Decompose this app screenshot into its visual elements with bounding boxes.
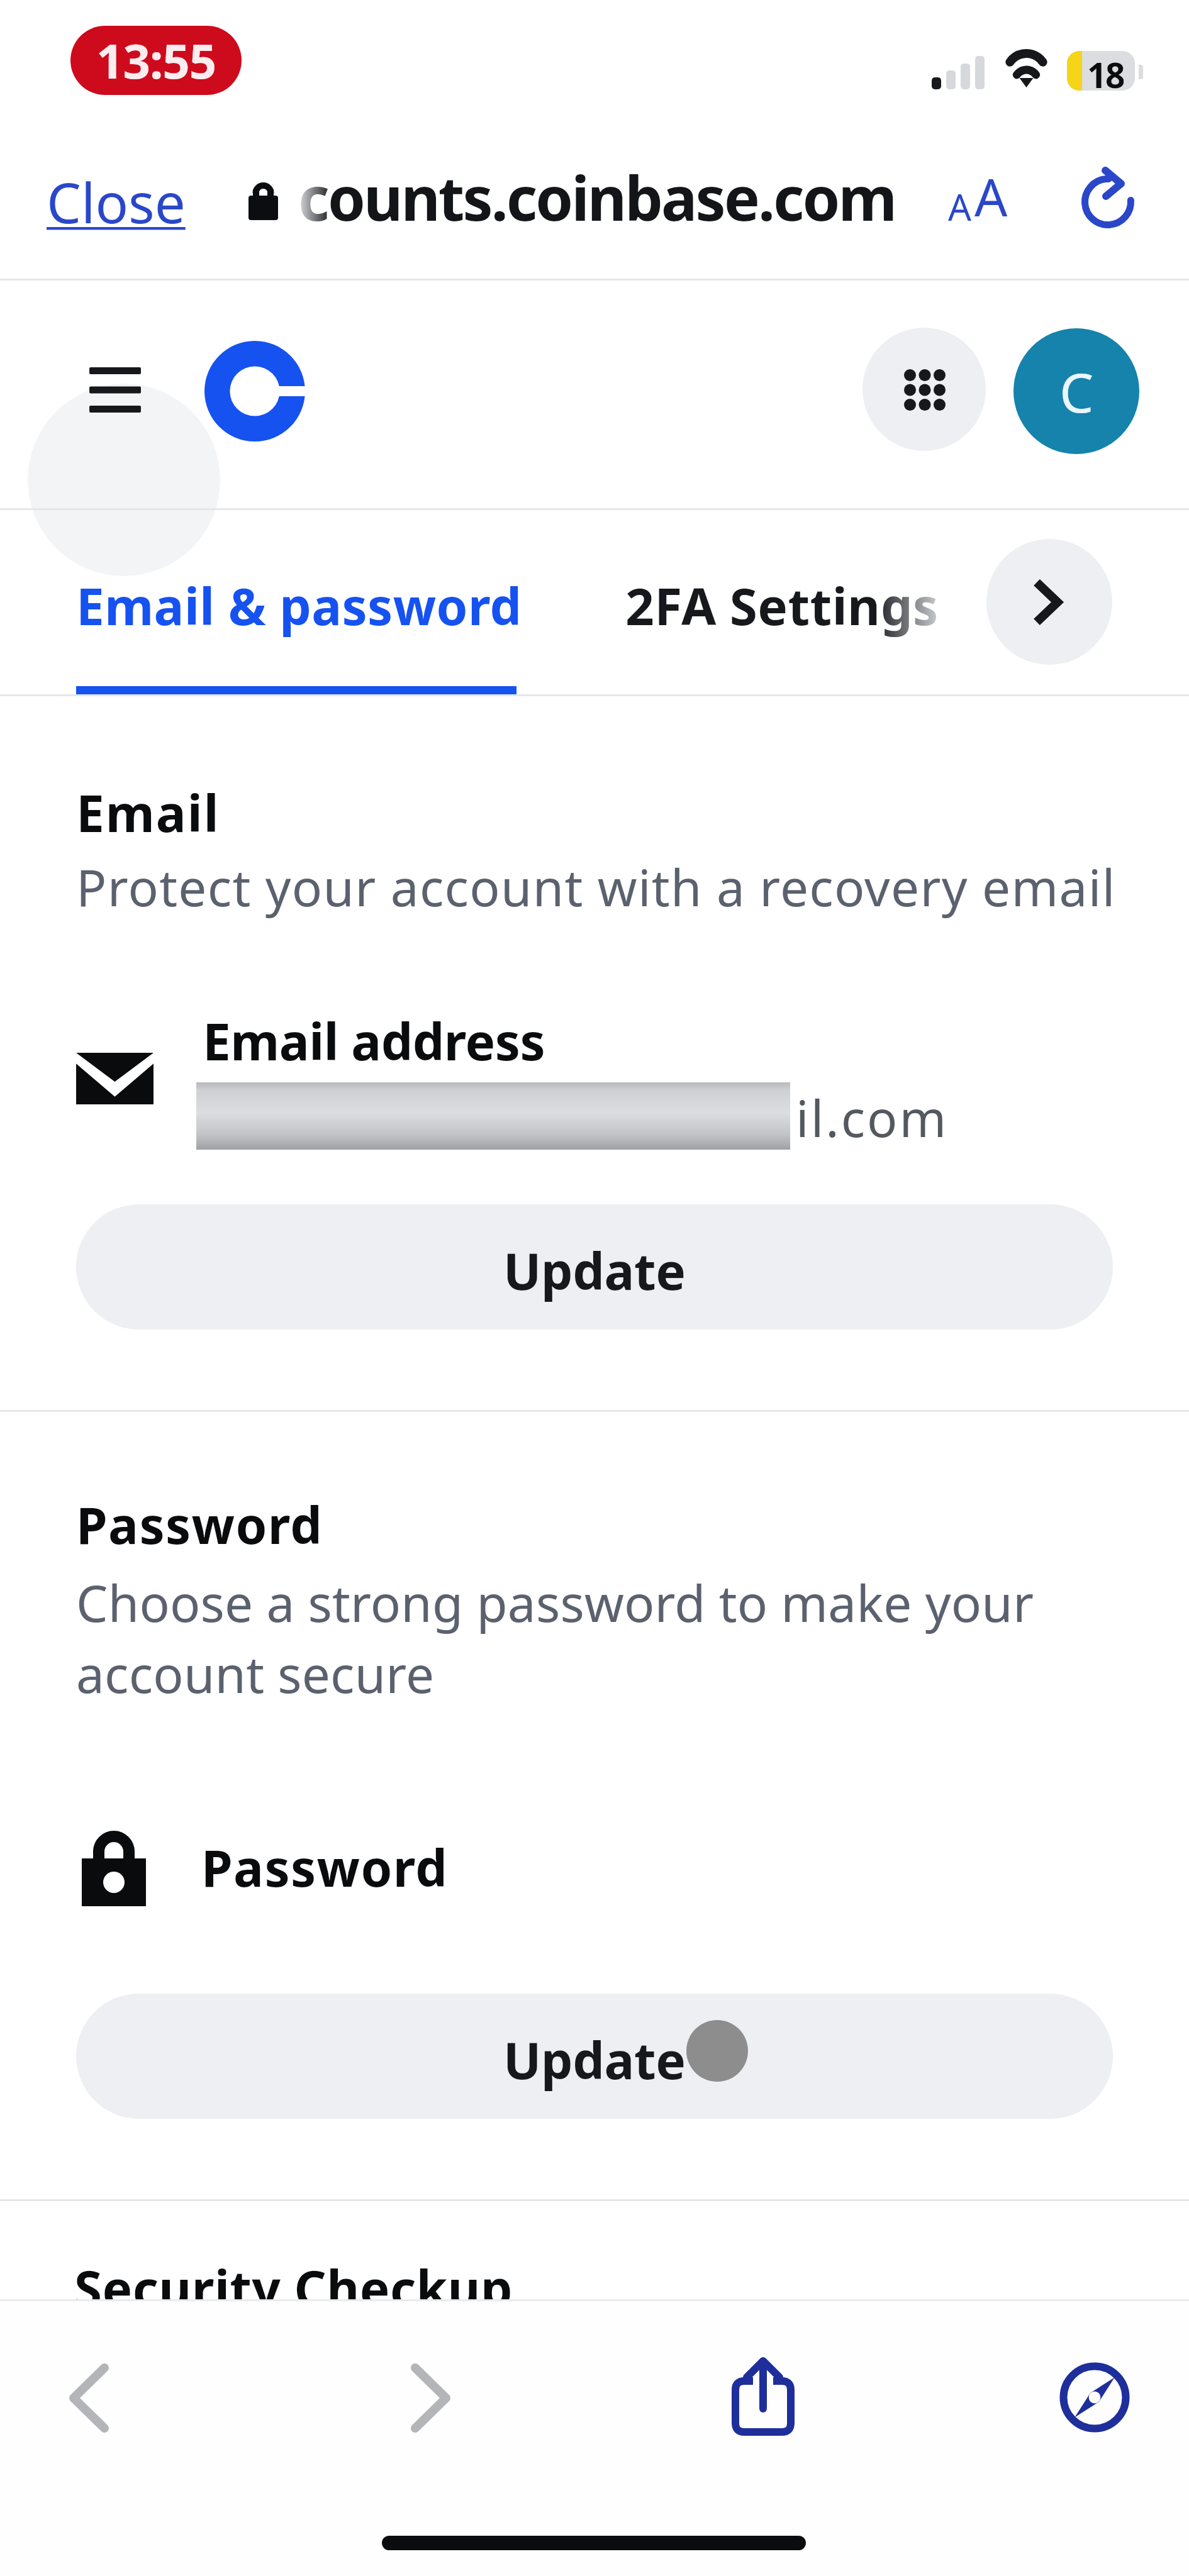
button[interactable]: Update (76, 1994, 1113, 2119)
staticText: Close (47, 165, 186, 239)
button[interactable]: Back (47, 2349, 135, 2446)
staticText: 18 (1087, 51, 1124, 91)
button[interactable]: Email & password (76, 571, 522, 640)
staticText: 2FA Settin (625, 571, 881, 640)
button[interactable]: Open in Safari (1054, 2357, 1136, 2438)
button[interactable]: Apps grid (862, 328, 986, 451)
button[interactable]: Reload page (1080, 164, 1142, 233)
staticText: il.com (796, 1083, 949, 1152)
staticText: Email (76, 778, 220, 847)
staticText: gs (881, 571, 939, 640)
button[interactable]: More tabs (986, 539, 1112, 665)
staticText: C (1059, 355, 1094, 428)
staticText: Security Checkup (74, 2253, 513, 2322)
staticText: Choose a strong password to make your ac… (76, 1568, 1108, 1708)
staticText: Update (503, 1236, 686, 1304)
staticText: ounts.coinbase.com (328, 156, 896, 238)
staticText: 13:55 (96, 28, 216, 93)
button[interactable]: 2FA Settin (625, 571, 939, 640)
staticText: Protect your account with a recovery ema… (76, 852, 1116, 921)
staticText: Update (503, 2025, 686, 2094)
button[interactable]: Open menu (69, 352, 160, 428)
button[interactable]: Share (722, 2346, 804, 2446)
button[interactable]: Forward (389, 2349, 477, 2446)
staticText: Password (201, 1833, 449, 1901)
staticText: Password (76, 1490, 323, 1558)
staticText: A (974, 161, 1008, 231)
staticText: c (298, 156, 328, 238)
button[interactable]: Text size options (944, 157, 1012, 235)
staticText: Email & password (76, 571, 522, 640)
staticText: A (948, 182, 972, 231)
button[interactable]: Close (47, 165, 186, 239)
button[interactable]: Update (76, 1204, 1113, 1330)
staticText: Email address (203, 1006, 545, 1075)
button[interactable]: Account (1013, 328, 1139, 454)
